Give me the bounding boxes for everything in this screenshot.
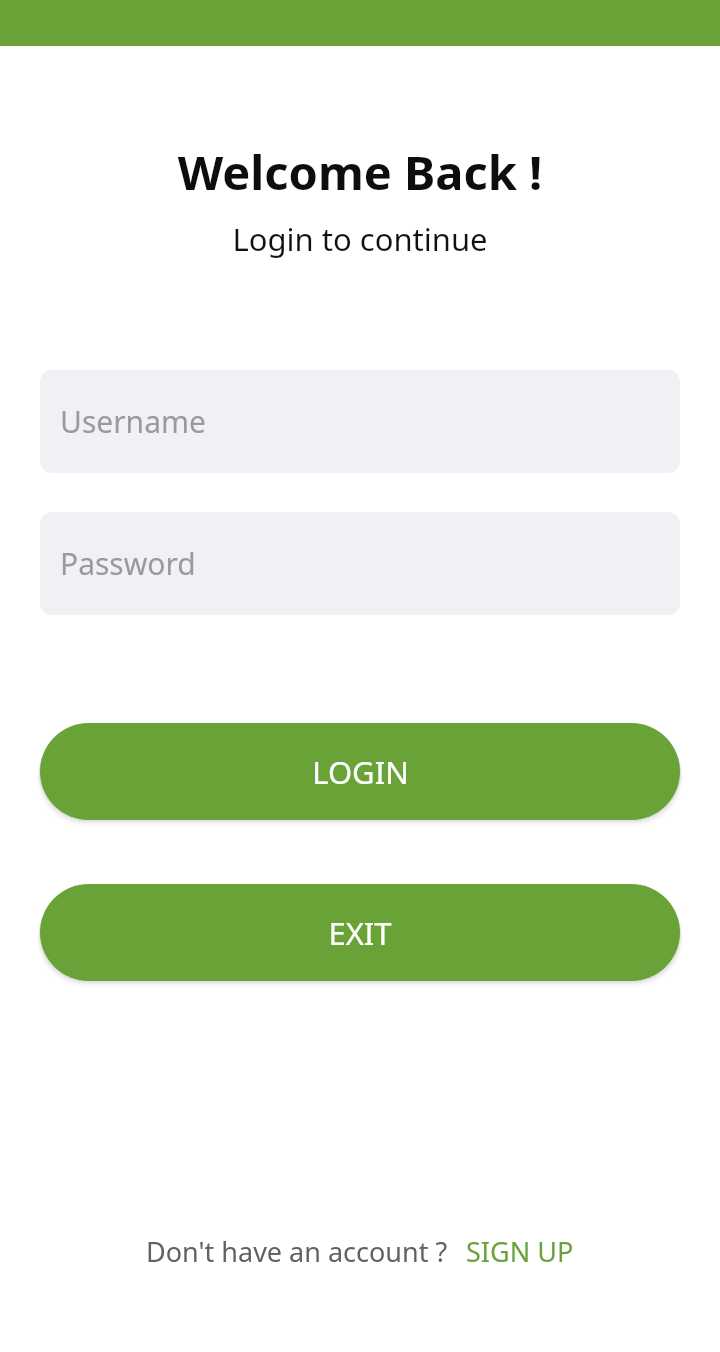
button[interactable]: Password: [40, 512, 680, 615]
button[interactable]: EXIT: [40, 884, 680, 981]
staticText: Login to continue: [0, 218, 720, 260]
staticText: Username: [60, 401, 206, 442]
button[interactable]: Username: [40, 370, 680, 473]
button[interactable]: SIGN UP: [466, 1233, 574, 1270]
staticText: Password: [60, 543, 196, 584]
staticText: SIGN UP: [466, 1233, 574, 1270]
staticText: LOGIN: [312, 751, 409, 793]
staticText: Don't have an account ?: [146, 1233, 448, 1270]
staticText: Welcome Back !: [0, 140, 720, 204]
staticText: EXIT: [328, 912, 392, 954]
button[interactable]: LOGIN: [40, 723, 680, 820]
